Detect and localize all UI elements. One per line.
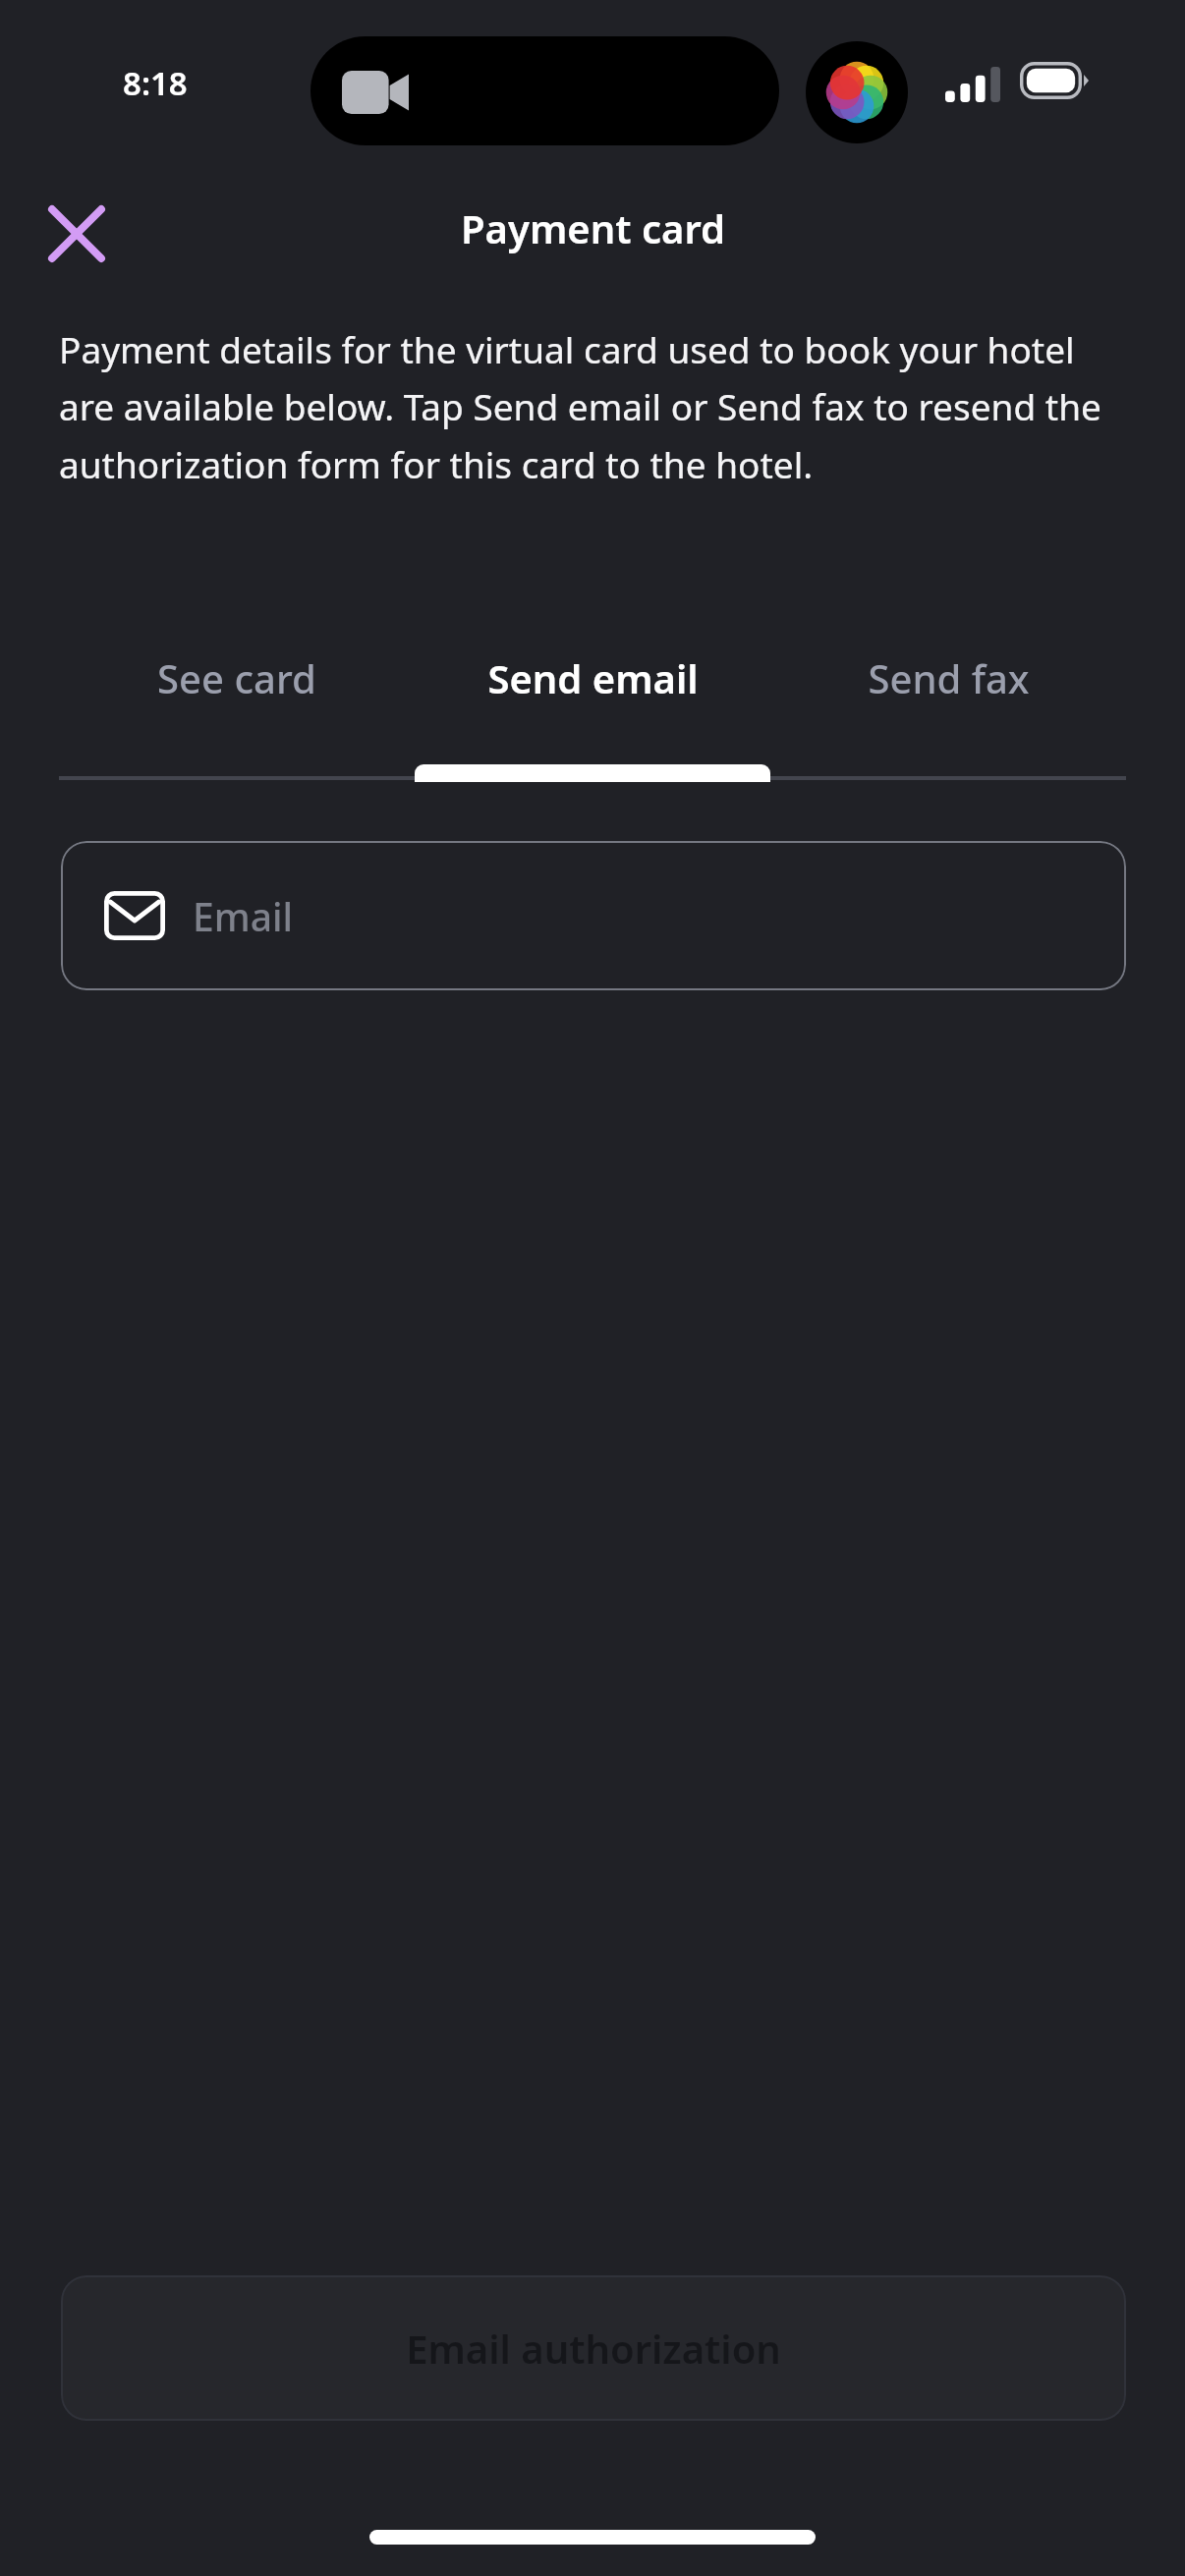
staticText: Payment details for the virtual card use… xyxy=(59,324,1130,489)
button[interactable]: Email authorization xyxy=(61,2275,1126,2421)
staticText: Send email xyxy=(487,651,699,704)
staticText: Email authorization xyxy=(406,2322,781,2375)
staticText: See card xyxy=(157,651,316,704)
button[interactable]: Send fax xyxy=(770,634,1126,779)
staticText: Payment card xyxy=(461,201,725,254)
staticText: 8:18 xyxy=(123,61,188,105)
staticText: Email xyxy=(193,890,294,942)
button[interactable]: Email xyxy=(61,841,1126,990)
staticText: Send fax xyxy=(868,651,1030,704)
button[interactable]: Close xyxy=(20,177,134,291)
button[interactable]: Send email xyxy=(415,634,770,779)
button[interactable]: See card xyxy=(59,634,415,779)
